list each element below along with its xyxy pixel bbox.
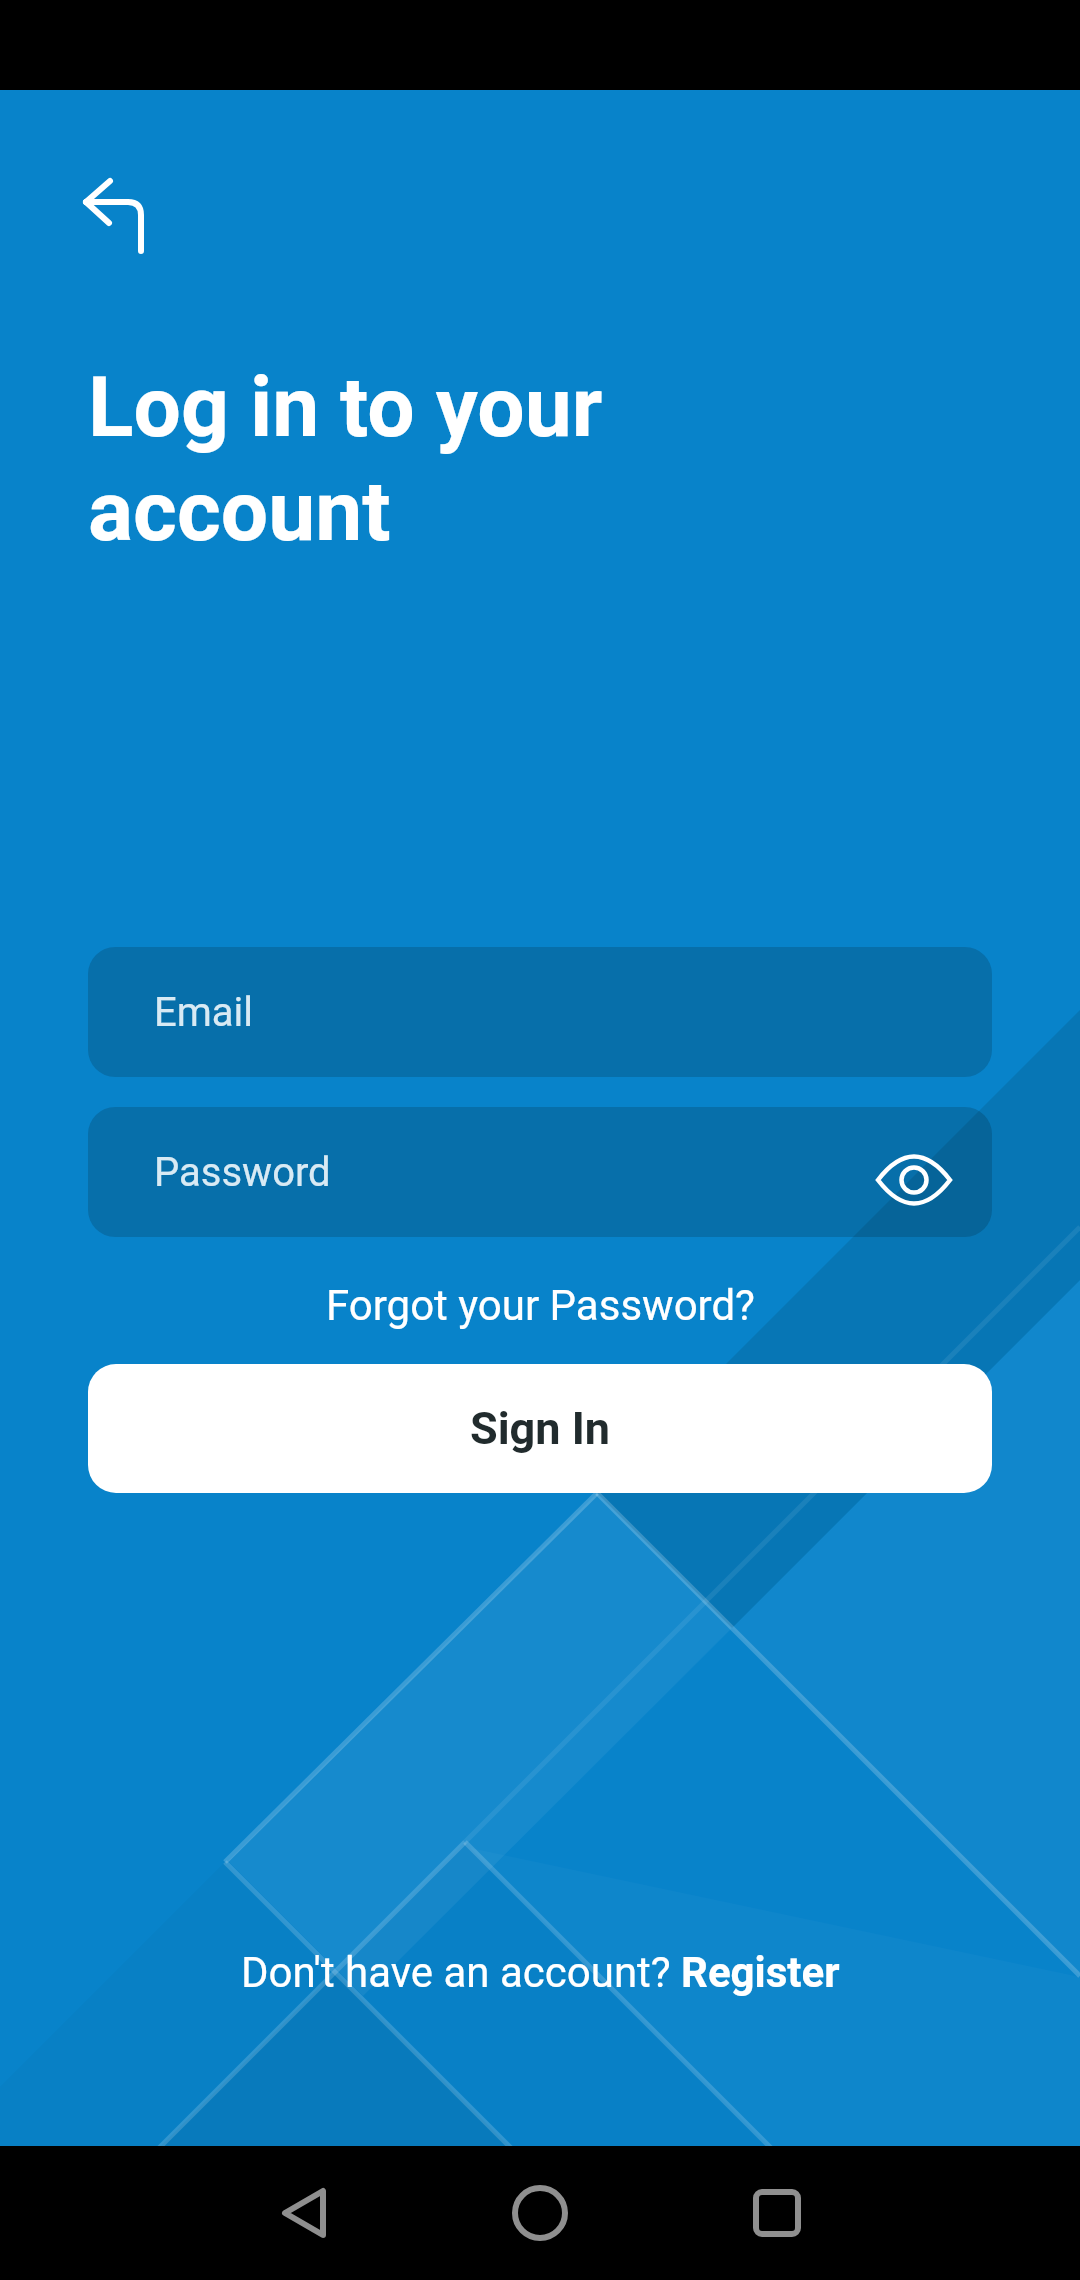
staticText: Password <box>154 1149 331 1196</box>
button[interactable] <box>257 2187 351 2239</box>
button[interactable]: Don't have an account? Register <box>241 1948 840 1997</box>
staticText: Log in to your account <box>88 358 603 561</box>
button[interactable]: Sign In <box>88 1364 992 1493</box>
button[interactable] <box>730 2189 824 2237</box>
button[interactable]: Password <box>88 1107 992 1237</box>
staticText: Sign In <box>470 1402 611 1455</box>
button[interactable]: Forgot your Password? <box>326 1281 755 1330</box>
staticText: Email <box>154 989 254 1036</box>
button[interactable] <box>493 2185 587 2241</box>
button[interactable] <box>68 166 160 258</box>
button[interactable]: Email <box>88 947 992 1077</box>
